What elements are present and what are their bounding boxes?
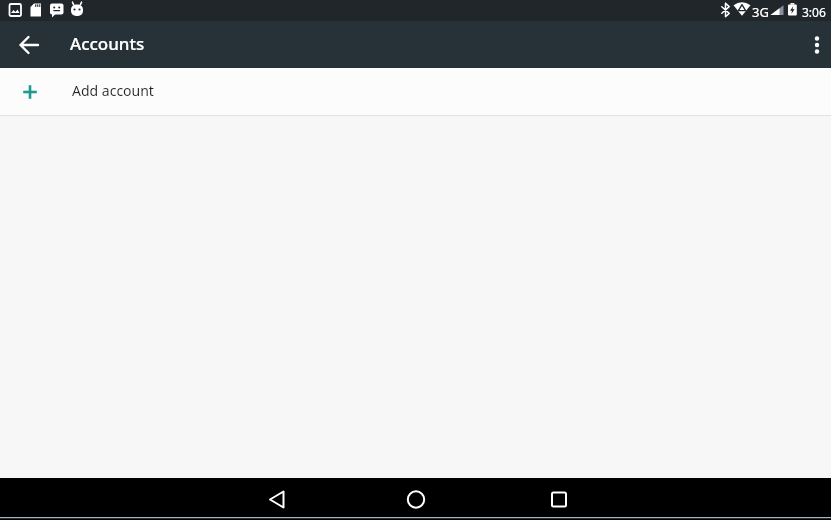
button[interactable]: Add account [0, 68, 831, 115]
staticText: 3:06 [802, 4, 826, 20]
button[interactable] [356, 478, 476, 520]
button[interactable] [499, 478, 619, 520]
button[interactable] [217, 478, 337, 520]
button[interactable] [0, 21, 58, 68]
button[interactable] [791, 21, 831, 68]
staticText: 3G [752, 3, 769, 21]
staticText: Add account [72, 81, 154, 100]
staticText: Accounts [70, 32, 145, 55]
